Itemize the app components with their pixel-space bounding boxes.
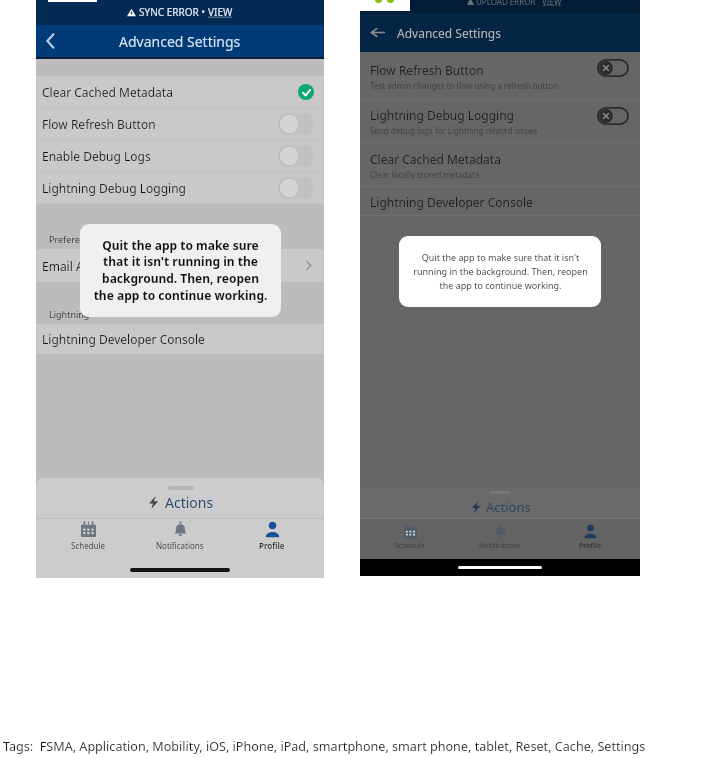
- staticText: Clear Cached Metadata: [370, 151, 501, 167]
- staticText: Quit the app to make sure that it isn't …: [413, 251, 588, 292]
- staticText: UPLOAD ERROR: [476, 0, 536, 7]
- button[interactable]: [278, 177, 314, 199]
- button[interactable]: [597, 107, 629, 125]
- button[interactable]: Clear Cached Metadata: [360, 143, 640, 187]
- button[interactable]: Lightning Developer Console: [36, 324, 324, 354]
- staticText: Notifications: [479, 541, 521, 551]
- staticText: Preferences: [49, 233, 100, 245]
- staticText: Advanced Settings: [119, 32, 241, 51]
- button[interactable]: Back: [370, 25, 385, 40]
- button[interactable]: Flow Refresh Button: [360, 52, 640, 100]
- button[interactable]: Profile: [232, 519, 312, 552]
- staticText: Lightning Debug Logging: [370, 107, 514, 123]
- staticText: Tags: FSMA, Application, Mobility, iOS, …: [3, 738, 646, 755]
- staticText: Email A: [42, 258, 84, 274]
- staticText: Advanced Settings: [397, 25, 501, 41]
- button[interactable]: Back: [41, 31, 61, 51]
- staticText: VIEW: [542, 0, 562, 7]
- button[interactable]: Schedule: [48, 519, 128, 552]
- button[interactable]: Schedule: [370, 519, 450, 555]
- staticText: VIEW: [208, 5, 233, 19]
- staticText: Quit the app to make sure that it isn't …: [93, 237, 268, 304]
- button[interactable]: Actions: [36, 478, 324, 518]
- staticText: Schedule: [71, 540, 106, 551]
- button[interactable]: Enable Debug Logs: [36, 140, 324, 172]
- button[interactable]: [278, 113, 314, 135]
- button[interactable]: Lightning Debug Logging: [36, 172, 324, 204]
- button[interactable]: [278, 145, 314, 167]
- button[interactable]: [597, 59, 629, 77]
- staticText: Enable Debug Logs: [42, 148, 151, 164]
- button[interactable]: Email A: [36, 249, 324, 282]
- staticText: Lightning Debug Logging: [42, 180, 186, 196]
- staticText: Flow Refresh Button: [42, 116, 156, 132]
- button[interactable]: Notifications: [460, 519, 540, 555]
- button[interactable]: Lightning Developer Console: [360, 187, 640, 216]
- staticText: Clear locally stored metadata: [370, 169, 480, 180]
- staticText: Send debug logs for Lightning related is…: [370, 125, 538, 136]
- staticText: Profile: [579, 541, 602, 551]
- staticText: Test admin changes to flow using a refre…: [370, 80, 559, 91]
- staticText: Schedule: [395, 541, 425, 551]
- staticText: Notifications: [156, 540, 204, 551]
- button[interactable]: Actions: [360, 487, 640, 518]
- staticText: Actions: [165, 493, 214, 512]
- button[interactable]: Profile: [550, 519, 630, 555]
- staticText: Actions: [486, 498, 531, 516]
- staticText: Lightning Developer Console: [370, 194, 533, 210]
- staticText: Flow Refresh Button: [370, 62, 484, 78]
- staticText: Clear Cached Metadata: [42, 84, 173, 100]
- button[interactable]: Clear Cached Metadata: [36, 76, 324, 108]
- staticText: Profile: [259, 540, 285, 551]
- staticText: Lightning: [49, 308, 90, 320]
- button[interactable]: Notifications: [140, 519, 220, 552]
- staticText: Lightning Developer Console: [42, 331, 205, 347]
- button[interactable]: Flow Refresh Button: [36, 108, 324, 140]
- staticText: SYNC ERROR •: [139, 5, 208, 19]
- button[interactable]: Lightning Debug Logging: [360, 100, 640, 143]
